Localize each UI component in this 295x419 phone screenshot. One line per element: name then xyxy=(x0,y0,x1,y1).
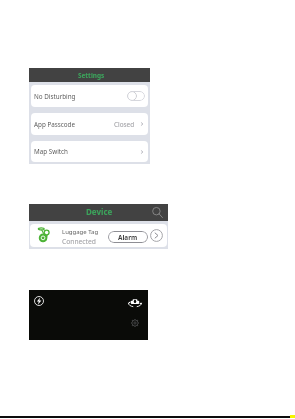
button[interactable]: Switch camera xyxy=(128,298,142,307)
button[interactable]: Device details xyxy=(150,229,163,242)
staticText: Connected xyxy=(62,237,96,246)
button[interactable]: Settings xyxy=(131,319,139,327)
button[interactable]: No Disturbing toggle xyxy=(127,91,145,101)
staticText: Device xyxy=(86,206,113,217)
staticText: Map Switch xyxy=(34,147,68,156)
button[interactable]: Alarm xyxy=(108,231,148,243)
staticText: Alarm xyxy=(118,233,138,242)
staticText: Settings xyxy=(78,71,105,80)
button[interactable]: No Disturbing xyxy=(31,85,148,107)
staticText: No Disturbing xyxy=(34,92,76,101)
button[interactable]: Flash xyxy=(34,296,44,306)
button[interactable]: Luggage Tag xyxy=(30,224,167,247)
staticText: Closed xyxy=(114,120,135,129)
button[interactable]: Search xyxy=(152,207,163,218)
staticText: App Passcode xyxy=(34,120,76,129)
button[interactable]: App Passcode xyxy=(31,113,148,135)
staticText: Luggage Tag xyxy=(62,228,99,236)
button[interactable]: Map Switch xyxy=(31,141,148,162)
